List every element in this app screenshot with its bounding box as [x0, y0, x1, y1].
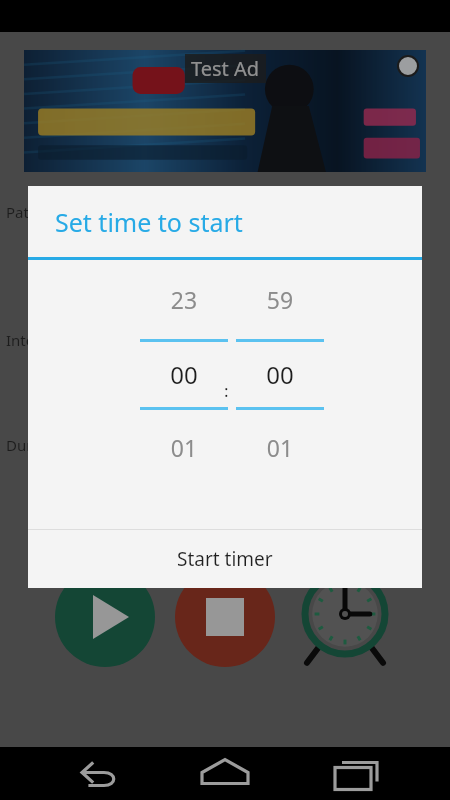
button[interactable]: 59	[236, 260, 324, 463]
button[interactable]: 23	[140, 260, 228, 463]
staticText: Test Ad	[191, 55, 260, 82]
staticText: Set time to start	[55, 205, 243, 239]
staticText: 00	[140, 358, 228, 391]
button[interactable]: Set timer	[295, 567, 395, 667]
button[interactable]: Back	[60, 747, 140, 800]
staticText: 23	[140, 284, 228, 315]
staticText: Dur	[6, 435, 33, 455]
staticText: :	[224, 379, 229, 402]
button[interactable]: Test Ad	[24, 50, 426, 172]
staticText: Pat	[6, 202, 29, 222]
staticText: Inte	[6, 330, 35, 350]
staticText: Start timer	[177, 546, 273, 572]
button[interactable]: Home	[185, 747, 265, 800]
staticText: 00	[236, 358, 324, 391]
button[interactable]: Recent apps	[315, 747, 395, 800]
staticText: 01	[236, 432, 324, 463]
button[interactable]: Start timer	[28, 530, 422, 588]
button[interactable]: Stop	[175, 567, 275, 667]
staticText: 59	[236, 284, 324, 315]
button[interactable]: Play	[55, 567, 155, 667]
staticText: 01	[140, 432, 228, 463]
